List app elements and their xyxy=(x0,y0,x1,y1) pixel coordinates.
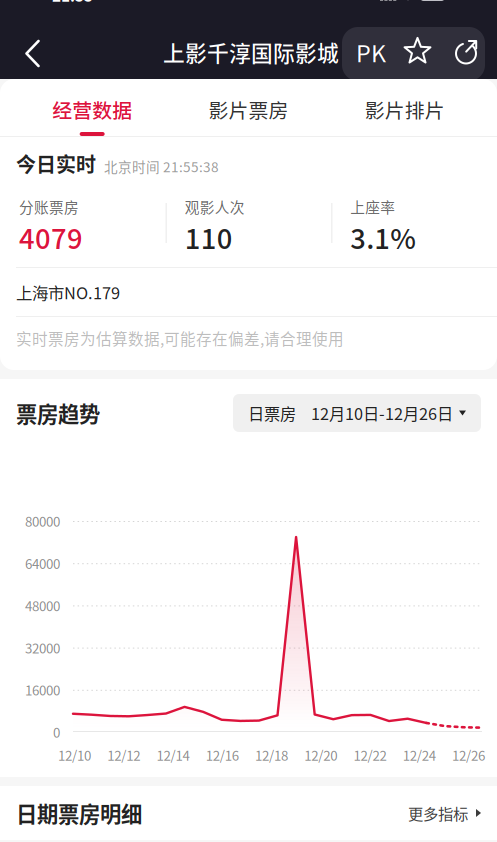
staticText: 12/22 xyxy=(353,745,386,765)
button[interactable]: Back xyxy=(8,25,58,82)
button[interactable]: 影片票房 xyxy=(170,79,327,136)
staticText: 12/20 xyxy=(304,745,337,765)
staticText: 21:55 xyxy=(52,0,93,6)
staticText: 3.1% xyxy=(350,217,416,257)
staticText: 12/18 xyxy=(255,745,288,765)
button[interactable]: PK xyxy=(348,25,394,79)
button[interactable]: 影片排片 xyxy=(327,79,483,136)
staticText: 北京时间 21:55:38 xyxy=(104,156,219,176)
staticText: 12/10 xyxy=(58,745,91,765)
staticText: 分账票房 xyxy=(19,196,79,217)
staticText: 上影千淳国际影城 xyxy=(163,36,339,68)
staticText: 110 xyxy=(185,217,233,257)
staticText: 观影人次 xyxy=(185,196,245,217)
staticText: 32000 xyxy=(25,638,60,657)
staticText: 4079 xyxy=(19,217,83,257)
staticText: 64000 xyxy=(25,553,60,573)
staticText: 影片排片 xyxy=(365,95,445,124)
button[interactable]: Favorite xyxy=(394,25,442,79)
staticText: 今日实时 xyxy=(16,149,96,178)
staticText: 0 xyxy=(53,722,60,742)
staticText: 48000 xyxy=(25,596,60,615)
staticText: 12/16 xyxy=(206,745,239,765)
staticText: 80000 xyxy=(25,511,60,531)
staticText: 更多指标 xyxy=(408,802,468,824)
staticText: 16000 xyxy=(25,680,60,699)
button[interactable]: 更多指标 xyxy=(408,802,481,824)
staticText: 12月10日-12月26日 xyxy=(311,401,453,425)
staticText: 12/12 xyxy=(107,745,140,765)
staticText: 上海市NO.179 xyxy=(16,280,120,304)
staticText: 12/26 xyxy=(452,745,485,765)
staticText: 影片票房 xyxy=(208,95,288,124)
button[interactable]: Share xyxy=(442,25,491,79)
staticText: PK xyxy=(356,35,386,69)
staticText: 实时票房为估算数据,可能存在偏差,请合理使用 xyxy=(16,327,344,350)
staticText: 日期票房明细 xyxy=(16,798,142,828)
staticText: 日票房 xyxy=(248,401,296,425)
staticText: 12/14 xyxy=(157,745,190,765)
staticText: 票房趋势 xyxy=(16,398,100,428)
button[interactable]: 日票房 xyxy=(233,394,481,432)
staticText: 上座率 xyxy=(350,196,395,217)
staticText: 12/24 xyxy=(403,745,436,765)
button[interactable]: 经营数据 xyxy=(14,79,170,136)
staticText: 经营数据 xyxy=(52,95,132,124)
